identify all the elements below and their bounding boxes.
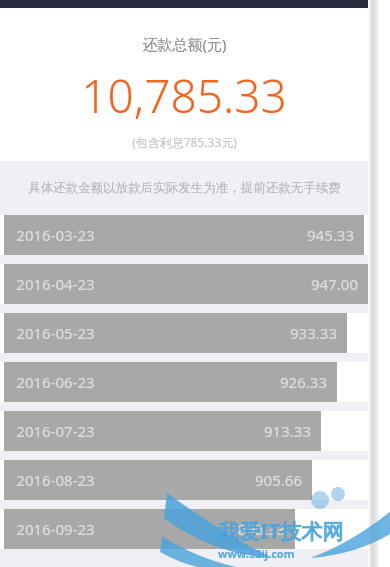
staticText: www.52ij.com	[218, 546, 295, 561]
button[interactable]: 2016-07-23	[0, 411, 368, 451]
staticText: 还款总额(元)	[142, 34, 227, 54]
staticText: 具体还款金额以放款后实际发生为准，提前还款无手续费	[28, 180, 341, 196]
button[interactable]: 2016-05-23	[0, 313, 368, 353]
button[interactable]: 2016-03-23	[0, 215, 368, 255]
staticText: 945.33	[307, 225, 354, 245]
staticText: 947.00	[311, 274, 358, 294]
button[interactable]: 2016-06-23	[0, 362, 368, 402]
staticText: 10,785.33	[81, 64, 287, 127]
button[interactable]: 2016-04-23	[0, 264, 368, 304]
staticText: 2016-09-23	[16, 519, 95, 539]
staticText: 2016-07-23	[16, 421, 95, 441]
other: Watermark	[0, 0, 390, 567]
staticText: 2016-03-23	[16, 225, 95, 245]
staticText: 2016-04-23	[16, 274, 95, 294]
staticText: 895.33	[238, 519, 285, 539]
staticText: 913.33	[264, 421, 311, 441]
button[interactable]: 2016-08-23	[0, 460, 368, 500]
staticText: 2016-05-23	[16, 323, 95, 343]
button[interactable]: 2016-09-23	[0, 509, 368, 549]
staticText: 2016-06-23	[16, 372, 95, 392]
staticText: 2016-08-23	[16, 470, 95, 490]
staticText: 905.66	[255, 470, 302, 490]
staticText: 我爱IT技术网	[218, 517, 344, 546]
staticText: (包含利息785.33元)	[132, 134, 237, 150]
staticText: 933.33	[290, 323, 337, 343]
staticText: 926.33	[280, 372, 327, 392]
